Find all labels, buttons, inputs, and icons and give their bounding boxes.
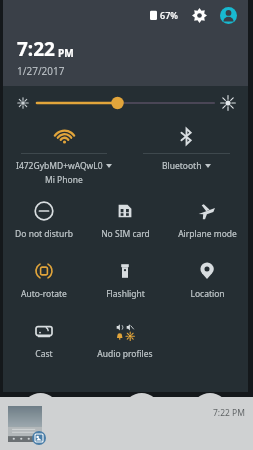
staticText: Cast xyxy=(35,348,53,360)
button[interactable] xyxy=(3,86,248,120)
staticText: 7:22 PM xyxy=(213,407,245,419)
staticText: Airplane mode xyxy=(178,228,237,240)
staticText: PM xyxy=(58,46,74,60)
button[interactable]: Audio profiles xyxy=(84,310,166,370)
button[interactable]: Screenshot captured. xyxy=(0,397,253,450)
staticText: Do not disturb xyxy=(15,228,73,240)
button[interactable]: No SIM card xyxy=(84,190,166,250)
button[interactable]: Location xyxy=(166,250,248,310)
button[interactable]: I472GybMD+wAQwL0 xyxy=(3,120,125,186)
staticText: 67% xyxy=(160,9,178,21)
staticText: Flashlight xyxy=(106,288,145,300)
staticText: Location xyxy=(190,288,225,300)
button[interactable]: Cast xyxy=(3,310,84,370)
staticText: Mi Phone xyxy=(45,174,83,186)
button[interactable]: Do not disturb xyxy=(3,190,84,250)
button[interactable]: Settings xyxy=(189,5,209,25)
staticText: 1/27/2017 xyxy=(17,64,65,78)
button[interactable]: Flashlight xyxy=(84,250,166,310)
staticText: I472GybMD+wAQwL0 xyxy=(16,160,103,172)
button[interactable]: Bluetooth xyxy=(125,120,248,186)
button[interactable]: Airplane mode xyxy=(166,190,248,250)
button[interactable]: User xyxy=(218,5,238,25)
staticText: Auto-rotate xyxy=(21,288,67,300)
staticText: Audio profiles xyxy=(97,348,153,360)
staticText: 7:22 xyxy=(17,36,55,62)
staticText: Bluetooth xyxy=(162,160,202,172)
button[interactable]: Auto-rotate xyxy=(3,250,84,310)
staticText: No SIM card xyxy=(101,228,150,240)
